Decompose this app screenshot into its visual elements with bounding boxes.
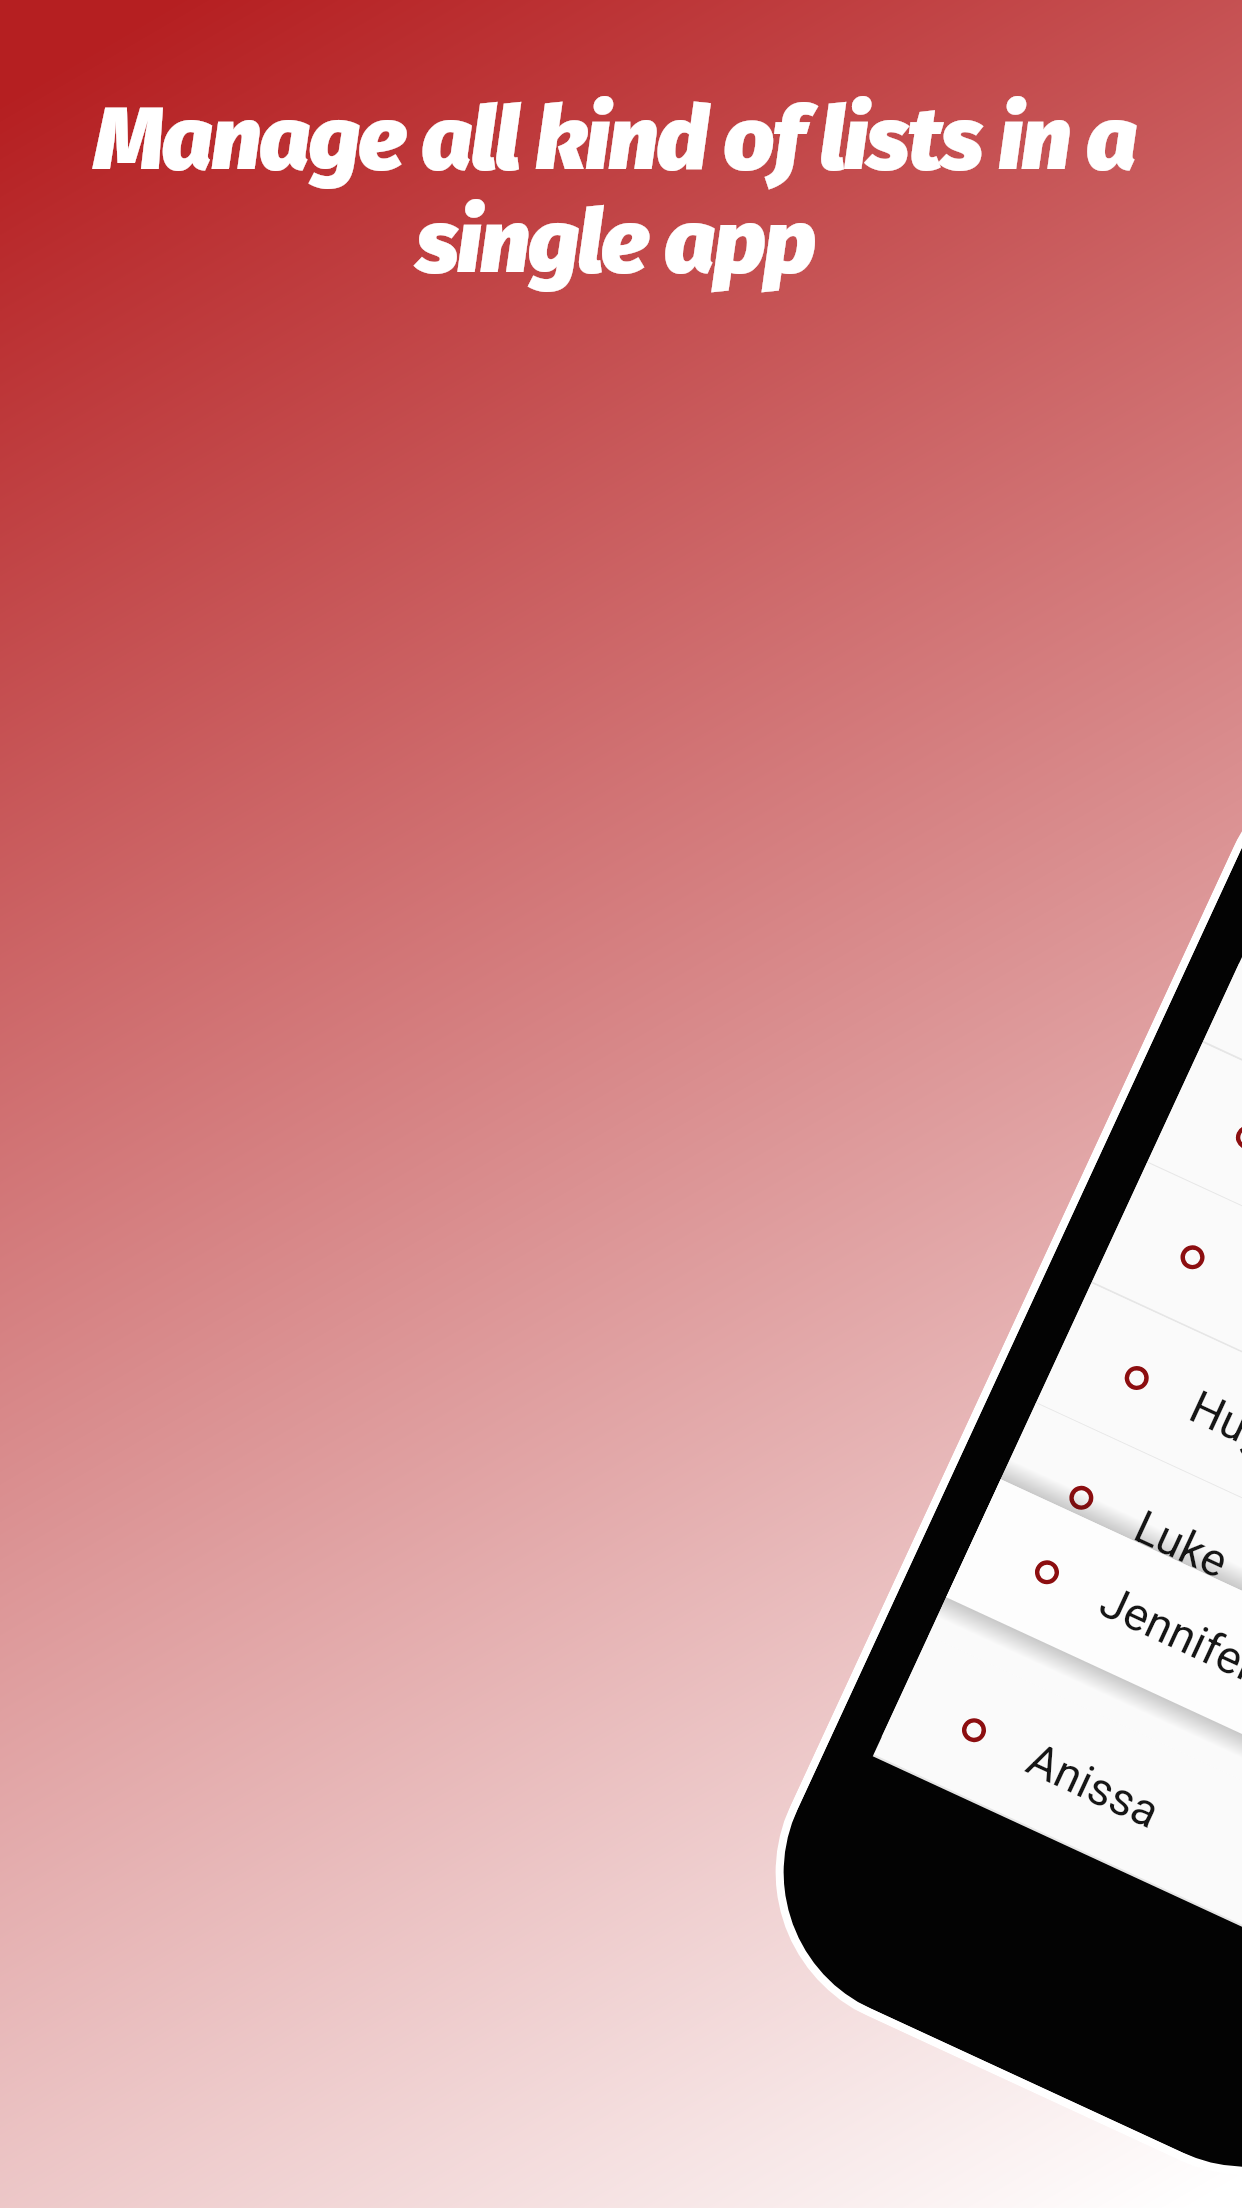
- button[interactable]: Toggle Steve: [1219, 1108, 1242, 1167]
- button[interactable]: Toggle Luke: [980, 1403, 1242, 1755]
- staticText: Manage all kind of lists in a single app: [54, 86, 1176, 296]
- button[interactable]: Toggle Hugo: [1035, 1283, 1242, 1635]
- button[interactable]: Toggle Luke: [1052, 1469, 1111, 1527]
- button[interactable]: Toggle Steve: [1147, 1043, 1242, 1395]
- button[interactable]: Toggle Anissa: [873, 1635, 1242, 1988]
- button[interactable]: Toggle Anissa: [945, 1701, 1003, 1759]
- staticText: Luke: [1126, 1499, 1237, 1589]
- button[interactable]: Toggle Brandon: [1091, 1162, 1242, 1515]
- button[interactable]: Toggle Jennifer: [1018, 1543, 1076, 1601]
- staticText: Hugo: [1182, 1379, 1242, 1475]
- button[interactable]: Toggle Jennifer: [946, 1479, 1242, 1829]
- button[interactable]: Toggle Mark: [1202, 922, 1242, 1274]
- button[interactable]: Toggle Hugo: [1107, 1349, 1166, 1407]
- staticText: Jennifer: [1092, 1574, 1242, 1693]
- staticText: Anissa: [1019, 1732, 1169, 1839]
- button[interactable]: Toggle Brandon: [1163, 1228, 1222, 1286]
